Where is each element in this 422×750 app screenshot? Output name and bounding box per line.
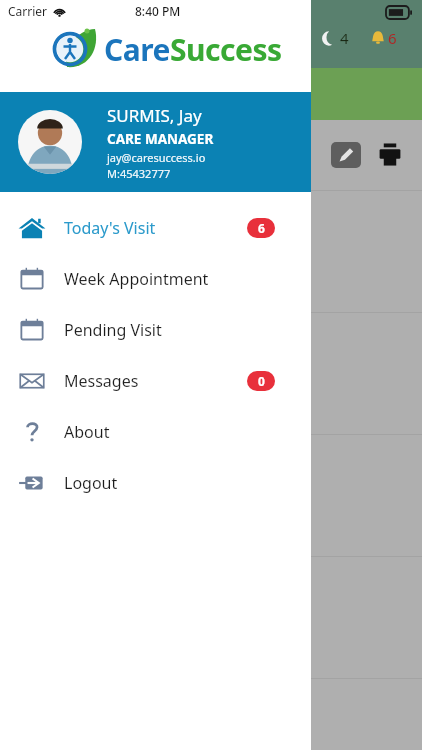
staticText: Care	[104, 29, 170, 70]
button[interactable]: About	[0, 406, 311, 457]
staticText: Pending Visit	[64, 319, 162, 341]
button[interactable]: Week Appointment	[0, 253, 311, 304]
staticText: 8:40 PM	[135, 3, 181, 19]
staticText: M:45432777	[107, 166, 171, 181]
staticText: Success	[170, 29, 282, 70]
staticText: 6	[258, 220, 265, 236]
staticText: jay@caresuccess.io	[107, 150, 206, 165]
button[interactable]: Messages	[0, 355, 311, 406]
staticText: Week Appointment	[64, 268, 209, 290]
button[interactable]: Today's Visit	[0, 202, 311, 253]
staticText: 0	[258, 373, 265, 389]
staticText: Logout	[64, 472, 118, 494]
staticText: CARE MANAGER	[107, 130, 214, 148]
staticText: Carrier	[8, 3, 48, 19]
button[interactable]: Pending Visit	[0, 304, 311, 355]
staticText: 6	[388, 28, 397, 48]
staticText: Messages	[64, 370, 139, 392]
button[interactable]: Logout	[0, 457, 311, 508]
staticText: About	[64, 421, 110, 443]
staticText: 4	[340, 28, 349, 48]
staticText: SURMIS, Jay	[107, 104, 202, 127]
staticText: Today's Visit	[64, 217, 156, 239]
button[interactable]: SURMIS, Jay	[0, 92, 311, 192]
button[interactable]: Print	[375, 141, 405, 169]
button[interactable]: Edit	[331, 142, 361, 168]
